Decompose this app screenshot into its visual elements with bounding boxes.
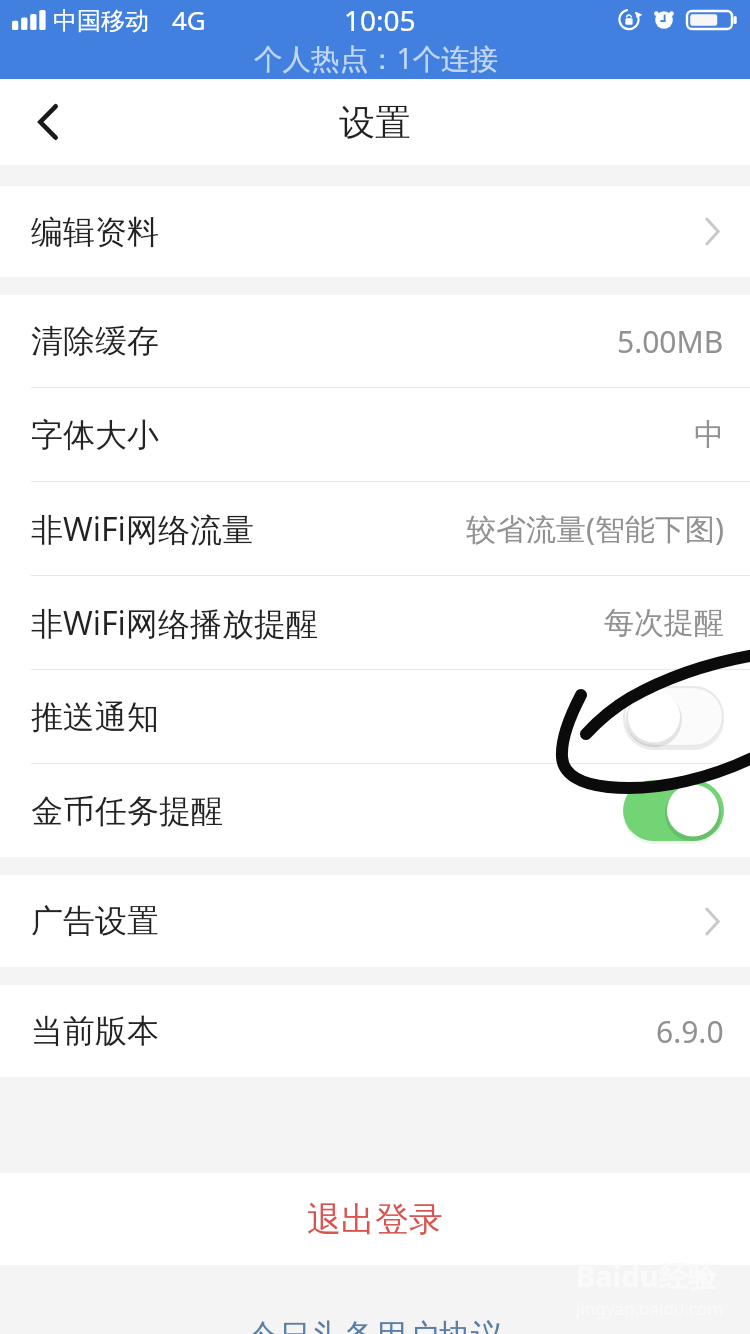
staticText: 金币任务提醒 [31, 791, 223, 831]
staticText: 每次提醒 [604, 604, 724, 642]
staticText: 5.00MB [617, 321, 724, 362]
staticText: 非WiFi网络播放提醒 [31, 601, 318, 645]
staticText: 今日头条用户协议 [247, 1316, 503, 1334]
button[interactable]: 退出登录 [0, 1173, 750, 1265]
staticText: 非WiFi网络流量 [31, 507, 254, 551]
staticText: 字体大小 [31, 415, 159, 455]
button[interactable]: 金币任务提醒 [0, 764, 750, 857]
button[interactable]: 字体大小 [0, 388, 750, 481]
staticText: 推送通知 [31, 697, 159, 737]
button[interactable]: 非WiFi网络播放提醒 [0, 576, 750, 669]
button[interactable]: 非WiFi网络流量 [0, 482, 750, 575]
button[interactable]: 推送通知 [0, 670, 750, 763]
staticText: 个人热点：1个连接 [254, 39, 499, 78]
staticText: 广告设置 [31, 901, 159, 941]
staticText: 4G [172, 2, 206, 37]
button[interactable]: 清除缓存 [0, 295, 750, 387]
staticText: 设置 [339, 100, 411, 145]
button[interactable]: Back [18, 92, 78, 152]
staticText: 编辑资料 [31, 212, 159, 252]
staticText: 中 [694, 416, 724, 454]
staticText: 6.9.0 [656, 1011, 724, 1052]
button[interactable]: 编辑资料 [0, 186, 750, 277]
button[interactable]: Toggle off [623, 686, 724, 747]
staticText: 退出登录 [307, 1198, 443, 1241]
staticText: 10:05 [344, 1, 416, 39]
staticText: 较省流量(智能下图) [466, 508, 724, 549]
staticText: 当前版本 [31, 1011, 159, 1051]
staticText: Baidu经验 [576, 1256, 717, 1296]
staticText: 中国移动 [53, 6, 149, 36]
button[interactable]: 当前版本 [0, 985, 750, 1077]
staticText: 清除缓存 [31, 321, 159, 361]
button[interactable]: 广告设置 [0, 875, 750, 967]
button[interactable]: Toggle on [623, 780, 724, 841]
